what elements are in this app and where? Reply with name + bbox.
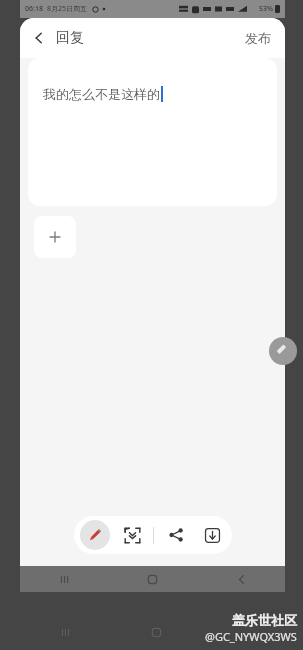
other: Back [32, 31, 46, 45]
button[interactable]: Pen [80, 520, 110, 550]
staticText: 06:18 [25, 4, 43, 14]
button[interactable]: Recents [49, 566, 79, 592]
button[interactable]: Drawing tools [269, 337, 297, 365]
staticText: 53% [259, 4, 273, 14]
button[interactable]: Share [162, 521, 190, 549]
button[interactable]: Home [137, 566, 167, 592]
staticText: 回复 [56, 29, 84, 47]
staticText: 8月25日周五 [47, 4, 88, 14]
button[interactable]: Download [198, 521, 226, 549]
button[interactable]: Back [226, 566, 256, 592]
button[interactable]: Back [20, 23, 92, 53]
button[interactable]: Add attachment [34, 216, 76, 258]
button[interactable]: 我的怎么不是这样的 [28, 58, 277, 206]
staticText: 发布 [245, 30, 271, 46]
staticText: 盖乐世社区 [232, 612, 297, 628]
button[interactable]: Scan text [118, 521, 146, 549]
staticText: @GC_NYWQX3WS [205, 629, 297, 644]
button[interactable]: 发布 [231, 22, 285, 54]
staticText: 我的怎么不是这样的 [43, 86, 160, 102]
